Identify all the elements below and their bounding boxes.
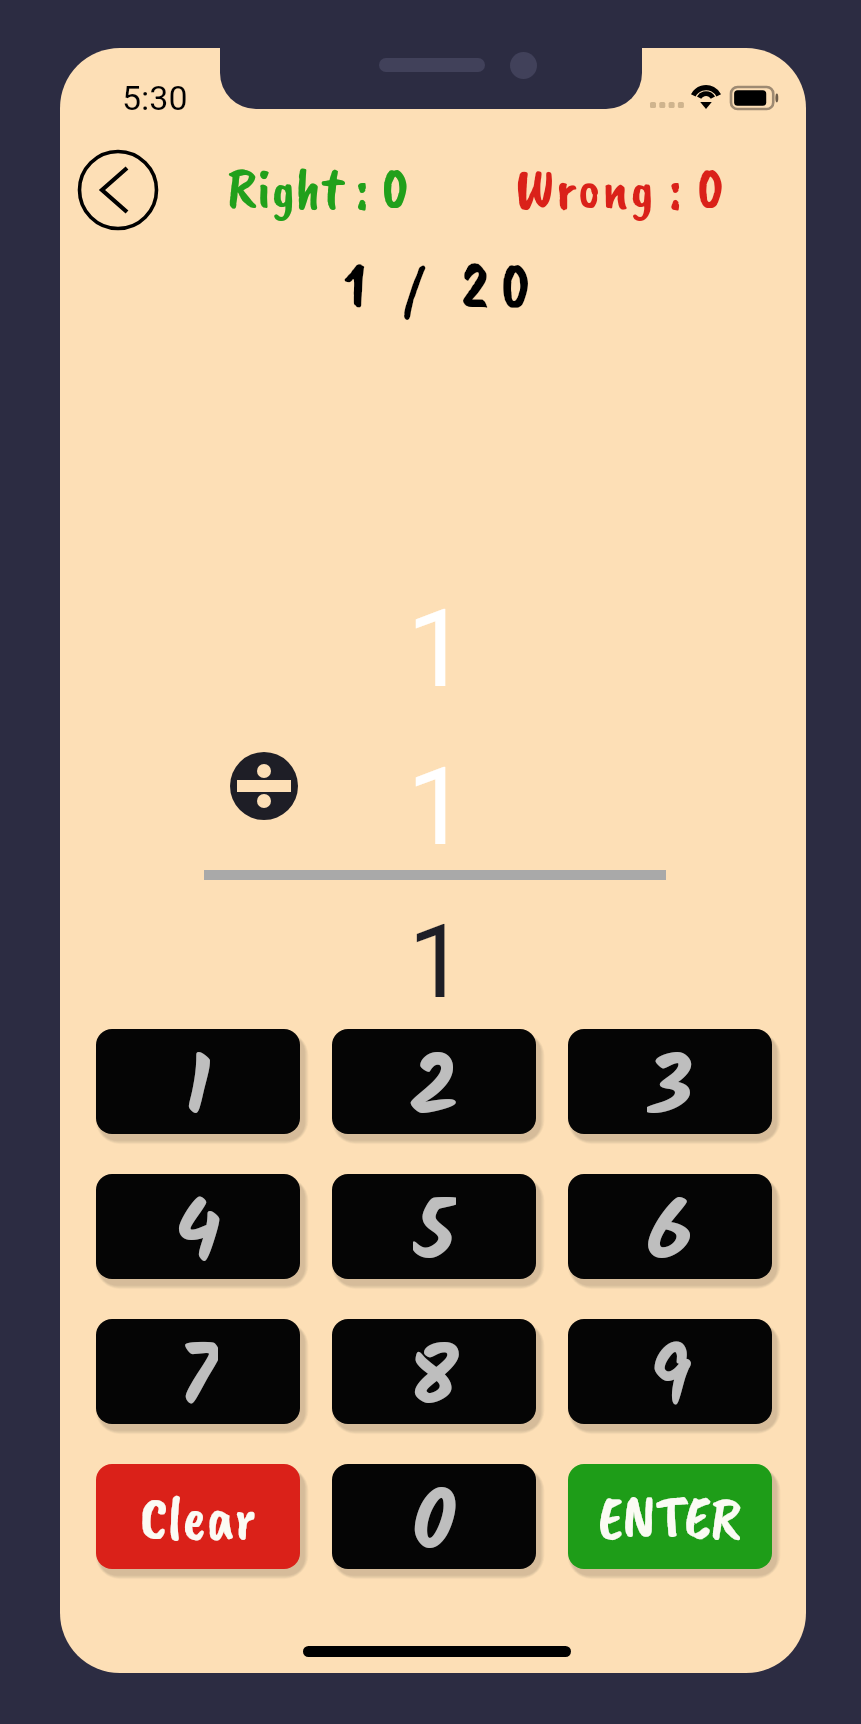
button[interactable]: Clear bbox=[96, 1464, 300, 1569]
staticText: 1 / 20 bbox=[70, 244, 806, 327]
button[interactable]: 4 bbox=[96, 1174, 300, 1279]
staticText: 3 bbox=[647, 1029, 693, 1130]
staticText: 8 bbox=[409, 1319, 459, 1420]
staticText: 5 bbox=[413, 1174, 456, 1275]
staticText: 6 bbox=[647, 1174, 693, 1275]
staticText: 2 bbox=[410, 1029, 459, 1130]
button[interactable]: 2 bbox=[332, 1029, 536, 1134]
button[interactable]: 3 bbox=[568, 1029, 772, 1134]
button[interactable]: 8 bbox=[332, 1319, 536, 1424]
button[interactable]: 7 bbox=[96, 1319, 300, 1424]
button[interactable]: 6 bbox=[568, 1174, 772, 1279]
button[interactable]: 1 bbox=[96, 1029, 300, 1134]
button[interactable]: 0 bbox=[332, 1464, 536, 1569]
staticText: Wrong : 0 bbox=[515, 150, 726, 226]
button[interactable]: Back bbox=[78, 150, 158, 230]
staticText: 1 bbox=[185, 1029, 211, 1130]
staticText: 7 bbox=[178, 1319, 218, 1420]
staticText: 4 bbox=[175, 1174, 221, 1275]
staticText: 5:30 bbox=[122, 78, 188, 118]
staticText: 1 bbox=[64, 745, 806, 870]
staticText: ENTER bbox=[598, 1478, 742, 1556]
button[interactable]: ENTER bbox=[568, 1464, 772, 1569]
staticText: 9 bbox=[649, 1319, 692, 1420]
staticText: Clear bbox=[140, 1478, 257, 1556]
staticText: 1 bbox=[64, 902, 806, 1022]
staticText: 0 bbox=[412, 1464, 456, 1565]
button[interactable]: 5 bbox=[332, 1174, 536, 1279]
button[interactable]: 9 bbox=[568, 1319, 772, 1424]
staticText: 1 bbox=[64, 587, 806, 712]
staticText: Right : 0 bbox=[227, 150, 410, 226]
